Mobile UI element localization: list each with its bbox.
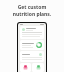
button[interactable] bbox=[20, 26, 44, 39]
staticText: Get custom bbox=[0, 4, 64, 11]
button[interactable]: Calories bbox=[20, 63, 31, 72]
button[interactable] bbox=[20, 51, 44, 62]
button[interactable] bbox=[20, 40, 44, 50]
button[interactable]: Protein bbox=[32, 63, 44, 72]
staticText: nutrition plans. bbox=[0, 11, 64, 18]
